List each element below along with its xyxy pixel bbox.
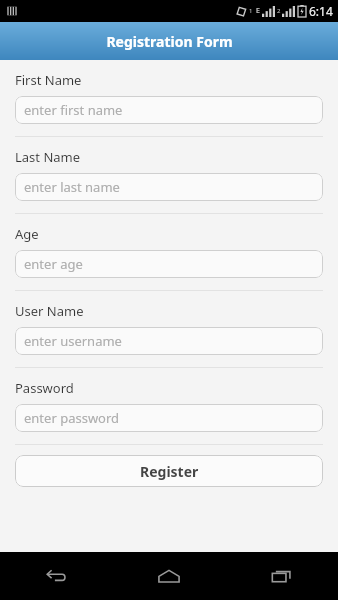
- staticText: enter age: [24, 255, 83, 273]
- button[interactable]: enter age: [15, 250, 323, 278]
- staticText: E: [256, 6, 260, 16]
- button[interactable]: enter first name: [15, 96, 323, 124]
- button[interactable]: Back: [0, 552, 112, 600]
- staticText: 2: [277, 7, 281, 15]
- staticText: Register: [140, 462, 199, 481]
- staticText: enter last name: [24, 178, 120, 196]
- staticText: enter username: [24, 332, 122, 350]
- staticText: Age: [15, 225, 39, 243]
- button[interactable]: enter last name: [15, 173, 323, 201]
- button[interactable]: enter password: [15, 404, 323, 432]
- staticText: 6:14: [309, 3, 333, 19]
- button[interactable]: Recent apps: [225, 552, 338, 600]
- staticText: Registration Form: [106, 32, 233, 51]
- staticText: First Name: [15, 71, 82, 89]
- staticText: Password: [15, 379, 74, 397]
- button[interactable]: Home: [112, 552, 225, 600]
- staticText: enter password: [24, 409, 120, 427]
- staticText: Last Name: [15, 148, 81, 166]
- staticText: User Name: [15, 302, 84, 320]
- button[interactable]: Register: [15, 455, 323, 487]
- staticText: 1: [249, 7, 253, 15]
- staticText: enter first name: [24, 101, 123, 119]
- button[interactable]: enter username: [15, 327, 323, 355]
